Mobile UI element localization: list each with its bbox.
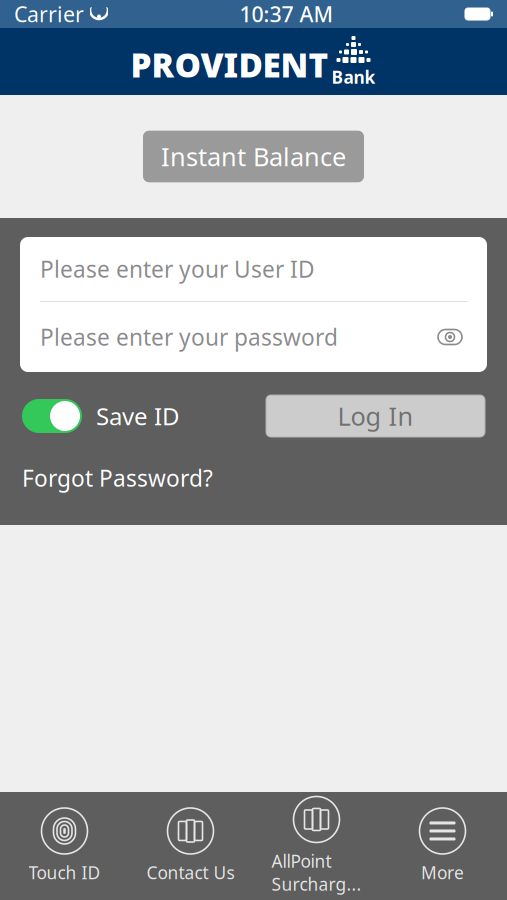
staticText: PROVIDENT (130, 42, 328, 87)
staticText: Save ID (96, 400, 180, 432)
staticText: Log In (337, 399, 413, 433)
button[interactable]: Save ID (22, 399, 180, 433)
staticText: Please enter your password (40, 322, 338, 352)
staticText: Contact Us (146, 861, 234, 884)
staticText: Please enter your User ID (40, 254, 315, 284)
staticText: 10:37 AM (239, 0, 333, 28)
button[interactable]: Touch ID (1, 800, 127, 892)
button[interactable]: Show password (433, 320, 467, 354)
staticText: Carrier (14, 0, 84, 28)
button[interactable]: Contact Us (127, 800, 253, 892)
staticText: Forgot Password? (22, 463, 213, 493)
staticText: Touch ID (28, 861, 100, 884)
button[interactable]: Forgot Password? (22, 463, 213, 493)
button[interactable]: AllPoint Surcharg... (253, 800, 379, 892)
staticText: Bank (331, 65, 375, 88)
button[interactable]: Log In (266, 395, 485, 437)
staticText: More (421, 861, 464, 884)
staticText: AllPoint Surcharg... (271, 849, 361, 895)
staticText: Instant Balance (161, 140, 346, 173)
button[interactable]: Instant Balance (143, 131, 364, 182)
button[interactable]: More (379, 800, 505, 892)
